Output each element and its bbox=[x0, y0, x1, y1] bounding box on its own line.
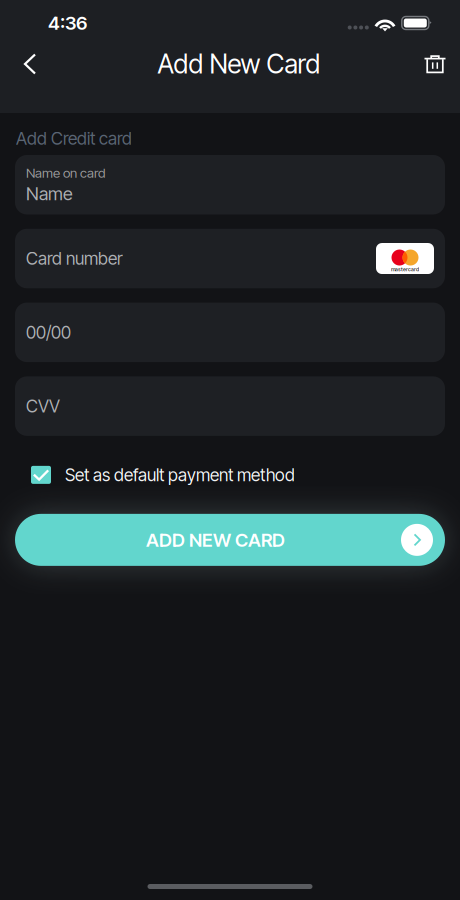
button[interactable]: Delete bbox=[417, 46, 453, 82]
staticText: ADD NEW CARD bbox=[146, 529, 285, 551]
button[interactable]: Back bbox=[12, 46, 48, 82]
staticText: Card number bbox=[26, 248, 123, 269]
button[interactable]: Set as default payment method bbox=[0, 436, 460, 514]
staticText: 4:36 bbox=[48, 12, 87, 34]
button[interactable]: ADD NEW CARD bbox=[15, 514, 445, 566]
staticText: Set as default payment method bbox=[65, 464, 295, 485]
staticText: Name bbox=[26, 183, 73, 205]
staticText: Add New Card bbox=[157, 48, 320, 80]
staticText: 00/00 bbox=[26, 322, 71, 343]
staticText: CVV bbox=[26, 396, 60, 417]
staticText: mastercard bbox=[391, 266, 419, 272]
staticText: Add Credit card bbox=[16, 128, 132, 149]
staticText: Name on card bbox=[26, 165, 105, 181]
